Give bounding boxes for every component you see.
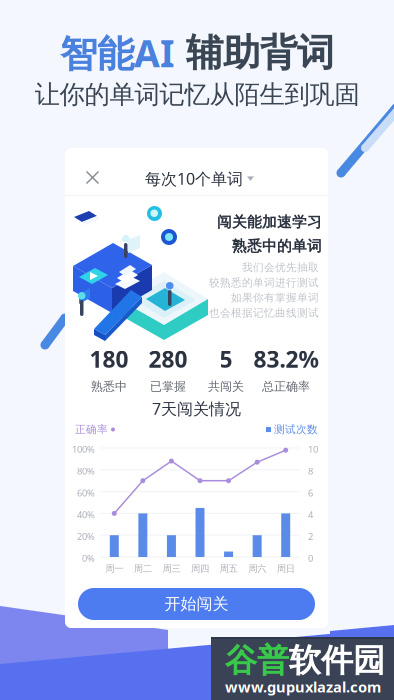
staticText: 熟悉中的单词 (232, 237, 322, 255)
staticText: 智能AI (60, 28, 175, 78)
staticText: 180 (89, 344, 128, 374)
staticText: 开始闯关 (164, 594, 228, 614)
staticText: 80% (77, 465, 95, 477)
staticText: 正确率 (75, 423, 108, 436)
button[interactable]: Close (76, 161, 109, 194)
staticText: 60% (77, 487, 95, 499)
staticText: 280 (148, 344, 187, 374)
staticText: 我们会优先抽取 (242, 261, 319, 274)
staticText: 83.2% (253, 344, 318, 374)
staticText: 谷普 (225, 641, 289, 680)
staticText: 如果你有掌握单词 (231, 291, 319, 304)
staticText: 10 (308, 443, 318, 455)
staticText: 0 (308, 552, 313, 564)
staticText: 周日 (277, 563, 295, 574)
button[interactable]: 开始闯关 (78, 588, 315, 620)
staticText: 4 (308, 508, 313, 521)
staticText: 8 (308, 465, 313, 477)
staticText: 5 (219, 344, 232, 374)
staticText: 辅助背词 (175, 30, 334, 76)
staticText: 周四 (191, 563, 209, 574)
staticText: 熟悉中 (91, 379, 127, 394)
staticText: 周六 (248, 563, 266, 574)
staticText: 周五 (220, 563, 238, 574)
staticText: 每次10个单词 (145, 168, 243, 189)
staticText: 共闯关 (208, 379, 244, 394)
staticText: 0% (82, 552, 95, 564)
staticText: 40% (77, 508, 95, 521)
staticText: 6 (308, 487, 313, 499)
staticText: 闯关能加速学习 (217, 213, 322, 231)
staticText: 较熟悉的单词进行测试 (209, 276, 319, 289)
staticText: 软件园 (289, 641, 385, 680)
staticText: 20% (77, 530, 95, 543)
staticText: 周三 (162, 563, 180, 574)
staticText: 2 (308, 530, 313, 543)
staticText: 已掌握 (150, 379, 186, 394)
staticText: www.gupuxlazal.com (225, 677, 381, 696)
staticText: 周二 (134, 563, 152, 574)
staticText: 7天闯关情况 (152, 398, 241, 419)
button[interactable]: 每次10个单词 (137, 163, 262, 194)
staticText: 也会根据记忆曲线测试 (209, 306, 319, 319)
staticText: 测试次数 (274, 423, 318, 436)
staticText: 周一 (105, 563, 123, 574)
staticText: 总正确率 (262, 379, 310, 394)
staticText: 让你的单词记忆从陌生到巩固 (34, 79, 359, 110)
staticText: 100% (72, 443, 95, 455)
